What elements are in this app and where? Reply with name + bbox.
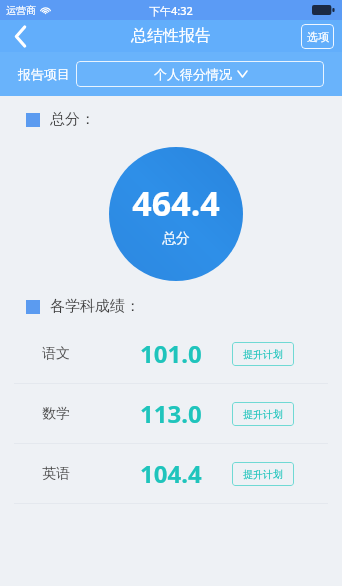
staticText: 113.0: [140, 397, 202, 430]
staticText: 提升计划: [243, 468, 283, 481]
staticText: 101.0: [140, 337, 202, 370]
button[interactable]: 提升计划: [232, 462, 294, 486]
button[interactable]: 464.4: [109, 147, 243, 281]
staticText: 464.4: [132, 180, 220, 226]
button[interactable]: 英语: [0, 444, 342, 503]
staticText: 总分: [162, 230, 190, 248]
button[interactable]: 数学: [0, 384, 342, 443]
staticText: 报告项目: [18, 66, 70, 82]
staticText: 语文: [42, 345, 70, 363]
button[interactable]: 选项: [301, 24, 334, 49]
button[interactable]: 提升计划: [232, 342, 294, 366]
staticText: 选项: [307, 30, 329, 44]
staticText: 104.4: [140, 457, 202, 490]
staticText: 各学科成绩：: [50, 297, 140, 316]
staticText: 数学: [42, 405, 70, 423]
staticText: 运营商: [6, 4, 36, 17]
staticText: 个人得分情况: [154, 66, 232, 82]
staticText: 提升计划: [243, 408, 283, 421]
button[interactable]: 语文: [0, 324, 342, 383]
staticText: 英语: [42, 465, 70, 483]
button[interactable]: 提升计划: [232, 402, 294, 426]
staticText: 下午4:32: [149, 3, 193, 18]
staticText: 提升计划: [243, 348, 283, 361]
staticText: 总结性报告: [131, 26, 211, 46]
button[interactable]: Back: [0, 20, 40, 52]
button[interactable]: 个人得分情况: [76, 61, 324, 87]
staticText: 总分：: [50, 110, 95, 129]
